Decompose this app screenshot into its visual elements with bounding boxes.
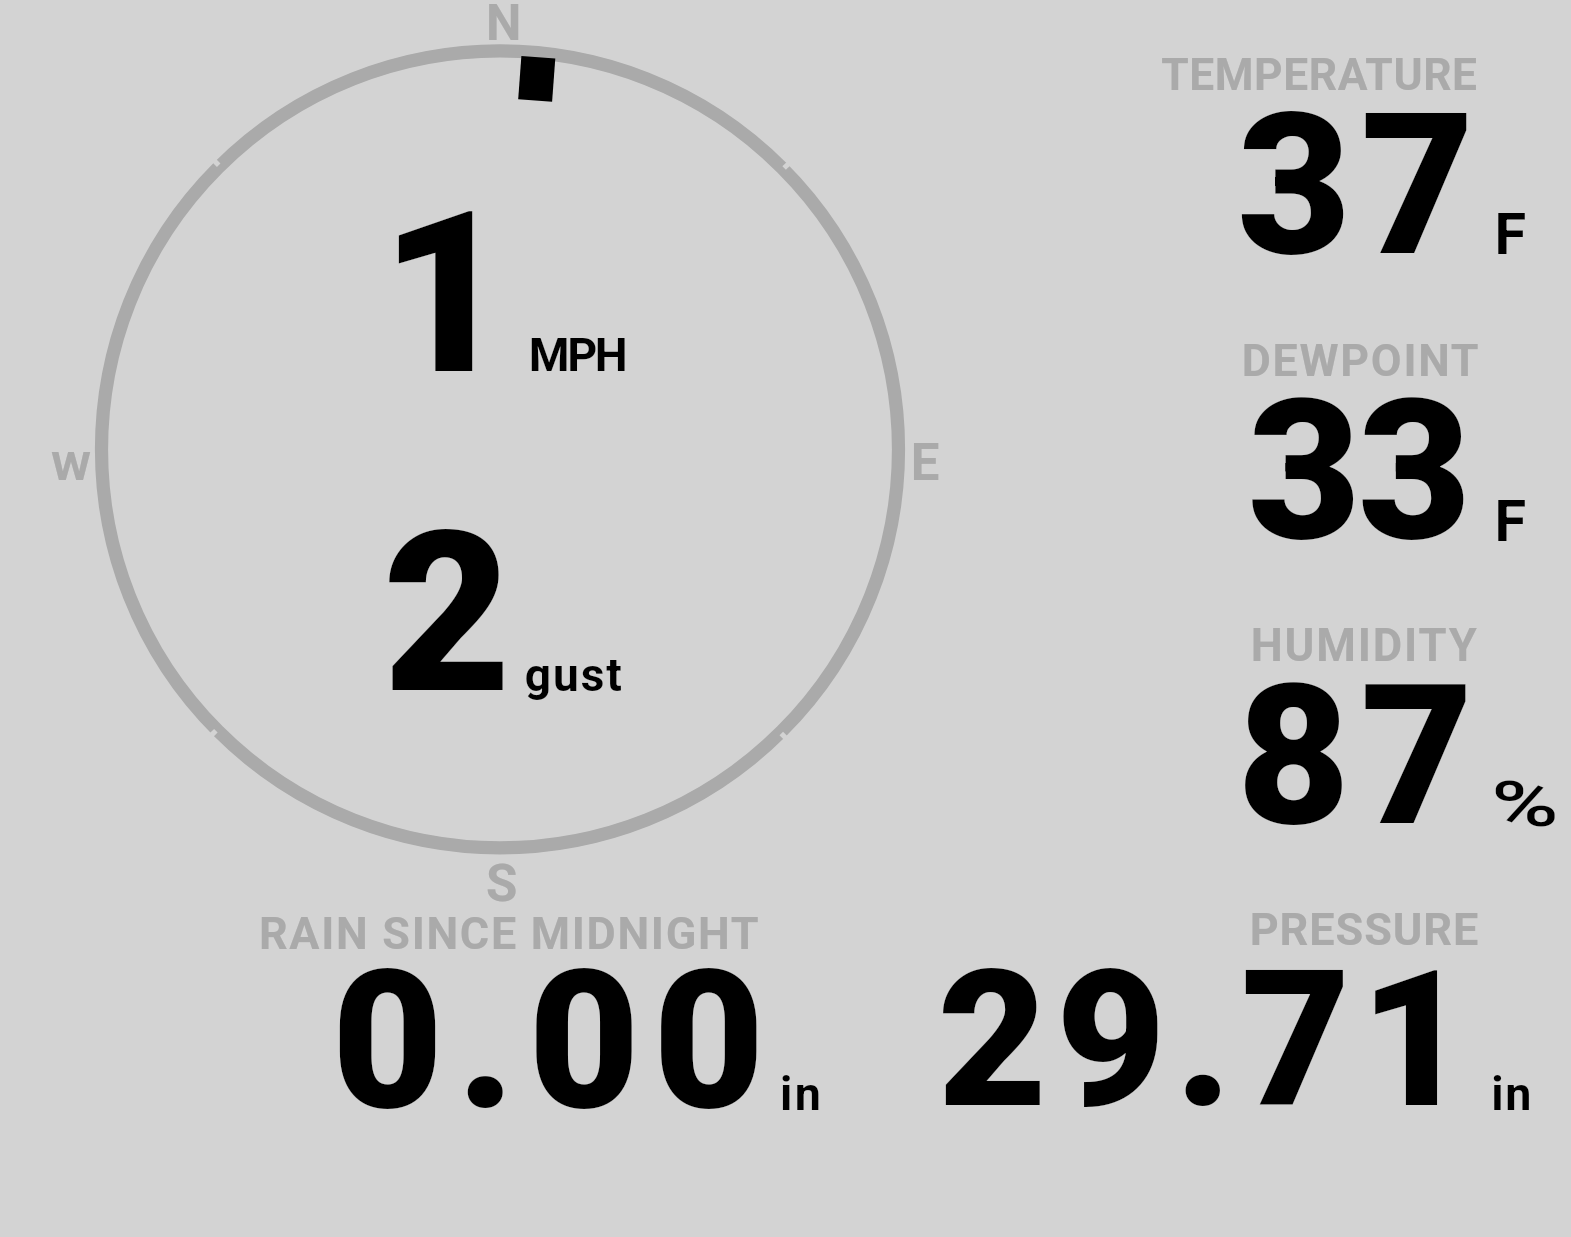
button[interactable]: Humidity 87 percent xyxy=(1150,600,1571,850)
button[interactable]: Wind 1 MPH, gust 2, direction north xyxy=(80,30,920,870)
button[interactable]: Dewpoint 33 F xyxy=(1150,310,1571,560)
button[interactable]: Pressure 29.71 in xyxy=(1150,890,1571,1130)
button[interactable]: Temperature 37 F xyxy=(1150,30,1571,280)
button[interactable]: Rain since midnight 0.00 in xyxy=(250,890,830,1130)
